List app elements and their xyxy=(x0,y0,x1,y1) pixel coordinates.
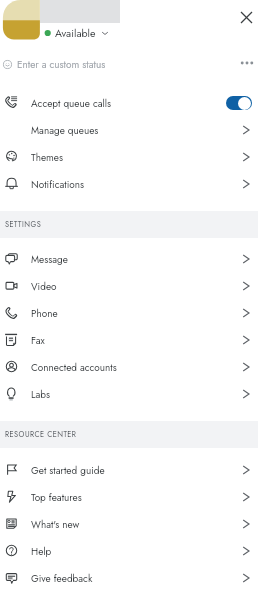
button[interactable]: Top features xyxy=(0,483,258,510)
staticText: Available xyxy=(55,26,96,41)
staticText: Phone xyxy=(31,306,58,320)
staticText: Video xyxy=(31,279,57,293)
button[interactable]: Message xyxy=(0,245,258,272)
staticText: Accept queue calls xyxy=(31,96,112,110)
staticText: Labs xyxy=(31,387,51,401)
staticText: Get started guide xyxy=(31,463,105,477)
button[interactable]: More options xyxy=(236,52,258,74)
staticText: What's new xyxy=(31,517,80,531)
button[interactable]: Enter a custom status xyxy=(0,51,258,77)
staticText: Manage queues xyxy=(31,123,99,137)
button[interactable]: Connected accounts xyxy=(0,353,258,380)
staticText: Message xyxy=(31,252,68,266)
staticText: Top features xyxy=(31,490,82,504)
staticText: Notifications xyxy=(31,177,84,191)
button[interactable]: Close xyxy=(234,5,258,29)
staticText: Help xyxy=(31,544,52,558)
button[interactable]: Fax xyxy=(0,326,258,353)
button[interactable]: Give feedback xyxy=(0,564,258,591)
staticText: Enter a custom status xyxy=(17,57,106,71)
staticText: RESOURCE CENTER xyxy=(5,429,77,440)
staticText: Themes xyxy=(31,150,64,164)
button[interactable]: Labs xyxy=(0,380,258,407)
button[interactable]: Get started guide xyxy=(0,456,258,483)
button[interactable]: Themes xyxy=(0,143,258,170)
staticText: Connected accounts xyxy=(31,360,117,374)
button[interactable]: Manage queues xyxy=(0,116,258,143)
button[interactable]: What's new xyxy=(0,510,258,537)
staticText: Fax xyxy=(31,333,45,347)
button[interactable]: Available xyxy=(42,24,114,42)
button[interactable]: Notifications xyxy=(0,170,258,197)
button[interactable]: Help xyxy=(0,537,258,564)
staticText: SETTINGS xyxy=(5,219,42,230)
button[interactable]: Video xyxy=(0,272,258,299)
staticText: Give feedback xyxy=(31,571,93,585)
button[interactable]: Phone xyxy=(0,299,258,326)
button[interactable]: Accept queue calls xyxy=(0,89,258,116)
